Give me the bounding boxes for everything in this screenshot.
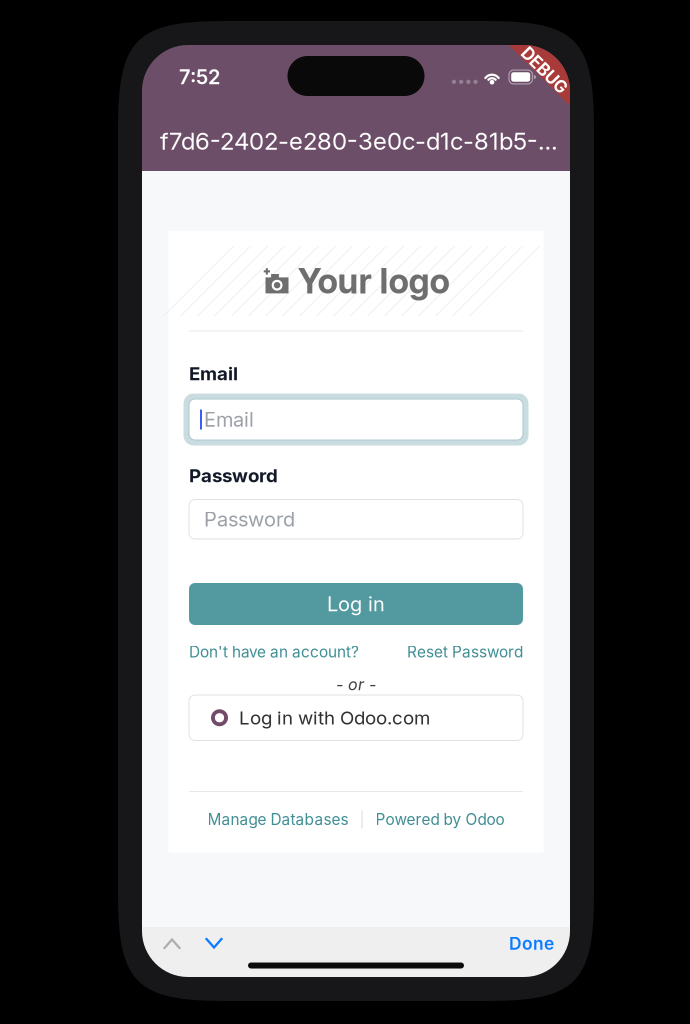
button[interactable]: Manage Databases [207, 813, 348, 825]
staticText: - or - [336, 675, 376, 694]
button[interactable]: Next field [194, 927, 234, 960]
staticText: Password [204, 507, 295, 531]
button[interactable]: Password [189, 499, 523, 539]
staticText: Log in with Odoo.com [239, 706, 430, 729]
staticText: Password [189, 464, 278, 487]
staticText: Your logo [297, 260, 449, 302]
button[interactable]: Previous field [152, 927, 192, 960]
staticText: Manage Databases [207, 810, 348, 829]
button[interactable]: Done [502, 927, 561, 960]
button[interactable]: Email [183, 393, 528, 445]
staticText: Email [204, 407, 254, 432]
staticText: f7d6-2402-e280-3e0c-d1c-81b5-… [160, 126, 558, 155]
staticText: Don't have an account? [189, 643, 359, 661]
staticText: 7:52 [179, 65, 220, 89]
button[interactable]: Powered by Odoo [375, 813, 504, 825]
staticText: Reset Password [407, 643, 523, 661]
button[interactable]: Reset Password [407, 645, 523, 659]
staticText: DEBUG [515, 60, 573, 81]
button[interactable]: Log in [189, 583, 523, 625]
button[interactable]: Don't have an account? [189, 645, 359, 659]
staticText: Done [509, 933, 554, 954]
staticText: Log in [327, 592, 385, 616]
staticText: Email [189, 362, 238, 385]
staticText: Powered by Odoo [375, 810, 504, 829]
button[interactable]: Log in with Odoo.com [189, 695, 523, 740]
